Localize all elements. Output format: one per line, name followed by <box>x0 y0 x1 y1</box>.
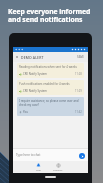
button[interactable]: Contacts <box>52 162 64 173</box>
staticText: Chat <box>36 169 41 172</box>
other: Back <box>15 55 19 59</box>
staticText: 11:28 <box>75 72 82 76</box>
staticText: Type here to chat <box>16 153 41 157</box>
button[interactable]: Chat <box>35 162 42 173</box>
staticText: Keep everyone informed and send notifica… <box>8 7 91 24</box>
staticText: I require assistance, so please come ove… <box>19 99 82 107</box>
staticText: You <box>23 110 28 114</box>
staticText: CRE Notify System <box>23 89 47 93</box>
staticText: Reading notifications when sent for 4 we… <box>19 65 77 69</box>
staticText: DEMO ALERT <box>21 55 44 60</box>
button[interactable]: Back <box>13 52 88 62</box>
button[interactable]: Send <box>79 153 85 159</box>
button[interactable]: Reading notifications when sent for 4 we… <box>17 63 84 78</box>
staticText: 11:29 <box>75 89 82 93</box>
staticText: Contacts <box>53 169 63 172</box>
staticText: CRE Notify System <box>23 72 47 76</box>
button[interactable]: I require assistance, so please come ove… <box>17 97 84 116</box>
staticText: Push notifications enabled for 4 weeks <box>19 82 70 86</box>
button[interactable]: SAVE <box>77 55 85 59</box>
staticText: 11:42 <box>75 110 82 114</box>
button[interactable]: Push notifications enabled for 4 weeks <box>17 80 84 95</box>
